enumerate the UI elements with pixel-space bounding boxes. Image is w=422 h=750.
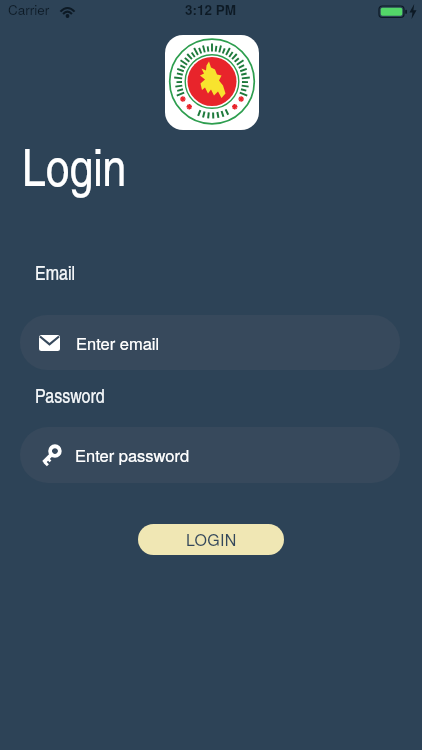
button[interactable]: Enter password — [20, 427, 400, 483]
staticText: LOGIN — [186, 528, 237, 551]
staticText: Enter password — [75, 443, 190, 467]
staticText: Email — [35, 259, 75, 286]
staticText: Login — [22, 129, 127, 200]
button[interactable]: LOGIN — [138, 524, 284, 555]
staticText: Carrier — [8, 0, 50, 19]
button[interactable]: Enter email — [20, 315, 400, 370]
staticText: 3:12 PM — [185, 0, 237, 19]
staticText: Password — [35, 382, 105, 409]
staticText: Enter email — [76, 331, 160, 355]
